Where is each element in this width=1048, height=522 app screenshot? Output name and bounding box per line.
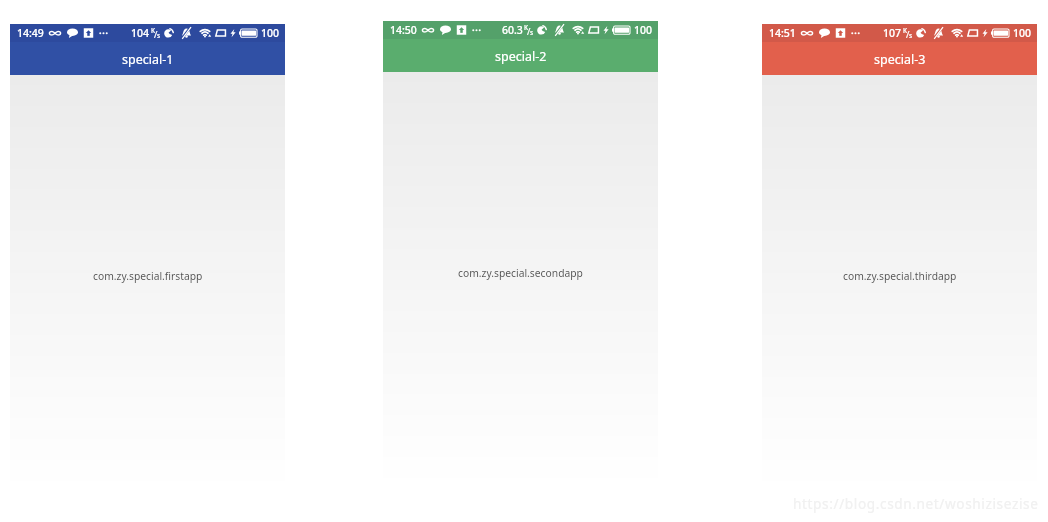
staticText: special-1 [122, 51, 174, 68]
staticText: com.zy.special.thirdapp [843, 269, 957, 283]
staticText: 107 [883, 26, 902, 40]
button[interactable]: special-2 [383, 39, 658, 72]
staticText: special-3 [874, 51, 926, 68]
staticText: / [906, 28, 910, 40]
button[interactable]: special-3 [762, 42, 1037, 75]
staticText: 100 [261, 26, 280, 40]
staticText: / [527, 25, 531, 37]
staticText: 60.3 [502, 23, 523, 37]
staticText: / [154, 28, 158, 40]
staticText: K [524, 23, 529, 32]
staticText: https://blog.csdn.net/woshizisezise [793, 494, 1039, 513]
staticText: com.zy.special.secondapp [458, 266, 583, 280]
staticText: s [157, 31, 161, 40]
staticText: 14:51 [769, 26, 796, 40]
staticText: 100 [634, 23, 653, 37]
staticText: s [530, 28, 534, 37]
staticText: special-2 [495, 48, 547, 65]
staticText: 100 [1013, 26, 1032, 40]
button[interactable]: special-1 [10, 42, 285, 75]
staticText: K [151, 26, 156, 35]
staticText: s [909, 31, 913, 40]
staticText: com.zy.special.firstapp [93, 269, 203, 283]
staticText: K [903, 26, 908, 35]
staticText: 14:50 [390, 23, 417, 37]
staticText: 104 [131, 26, 150, 40]
staticText: 14:49 [17, 26, 44, 40]
